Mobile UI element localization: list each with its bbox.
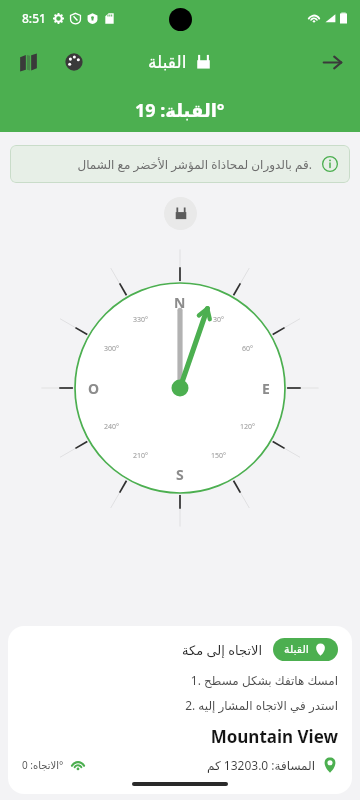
staticText: S — [176, 465, 184, 484]
staticText: المسافة: 13203.0 كم — [207, 757, 316, 773]
staticText: 240° — [104, 422, 120, 432]
staticText: الاتجاه إلى مكة — [182, 641, 263, 659]
staticText: القبلة — [148, 52, 187, 72]
staticText: الاتجاه: 0° — [22, 758, 64, 772]
button[interactable]: Map — [8, 42, 48, 82]
staticText: 30° — [213, 315, 225, 325]
staticText: 330° — [133, 315, 149, 325]
staticText: Mountain View — [22, 725, 338, 748]
button[interactable]: قم بالدوران لمحاذاة المؤشر الأخضر مع الش… — [10, 145, 350, 183]
staticText: 210° — [133, 451, 149, 461]
button[interactable]: Theme — [54, 42, 94, 82]
staticText: 2. استدر في الاتجاه المشار إليه — [22, 697, 338, 713]
staticText: 60° — [242, 344, 254, 354]
staticText: قم بالدوران لمحاذاة المؤشر الأخضر مع الش… — [77, 156, 312, 172]
staticText: 8:51 — [22, 10, 46, 26]
staticText: N — [174, 293, 186, 312]
button[interactable]: Next — [312, 42, 352, 82]
staticText: 120° — [240, 422, 256, 432]
staticText: E — [262, 379, 270, 398]
staticText: 1. امسك هاتفك بشكل مسطح — [22, 672, 338, 688]
button[interactable]: Hold phone flat — [164, 197, 197, 230]
staticText: القبلة — [284, 643, 309, 656]
staticText: القبلة: 19° — [135, 98, 225, 123]
staticText: 150° — [211, 451, 227, 461]
staticText: 300° — [104, 344, 120, 354]
button[interactable]: القبلة — [273, 638, 338, 661]
staticText: O — [88, 379, 100, 398]
